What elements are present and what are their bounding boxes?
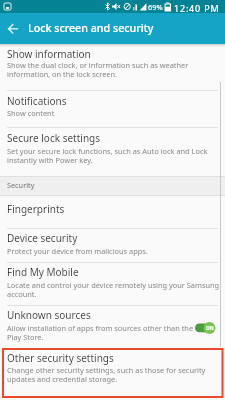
button[interactable]: Device security bbox=[0, 228, 225, 262]
button[interactable]: ON bbox=[193, 318, 220, 337]
staticText: Notifications bbox=[7, 94, 67, 108]
button[interactable]: Show information bbox=[0, 44, 225, 90]
staticText: 69% bbox=[148, 2, 163, 12]
staticText: Set your secure lock functions, such as … bbox=[7, 146, 208, 165]
staticText: Find My Mobile bbox=[7, 265, 79, 279]
staticText: Show content bbox=[7, 108, 55, 118]
staticText: Locate and control your device remotely … bbox=[7, 280, 220, 299]
staticText: Other security settings bbox=[7, 351, 114, 365]
staticText: Security bbox=[7, 180, 35, 190]
staticText: Fingerprints bbox=[7, 202, 65, 216]
staticText: Device security bbox=[7, 231, 78, 245]
button[interactable] bbox=[2, 18, 24, 39]
staticText: Protect your device from malicious apps. bbox=[7, 246, 148, 256]
staticText: ON bbox=[206, 325, 214, 332]
button[interactable]: Unknown sources bbox=[0, 305, 225, 348]
button[interactable]: Other security settings bbox=[0, 348, 225, 398]
button[interactable]: Secure lock settings bbox=[0, 127, 225, 176]
staticText: Change other security settings, such as … bbox=[7, 365, 206, 384]
staticText: Show the dual clock, or information such… bbox=[7, 60, 189, 79]
staticText: Unknown sources bbox=[7, 308, 91, 322]
staticText: Show information bbox=[7, 47, 91, 61]
button[interactable]: Lock screen and security bbox=[28, 21, 154, 36]
button[interactable]: Find My Mobile bbox=[0, 262, 225, 305]
staticText: Secure lock settings bbox=[7, 131, 100, 145]
button[interactable]: Notifications bbox=[0, 90, 225, 127]
staticText: Allow installation of apps from sources … bbox=[7, 323, 194, 342]
button[interactable]: Fingerprints bbox=[0, 196, 225, 228]
staticText: 12:40 PM bbox=[174, 2, 220, 14]
